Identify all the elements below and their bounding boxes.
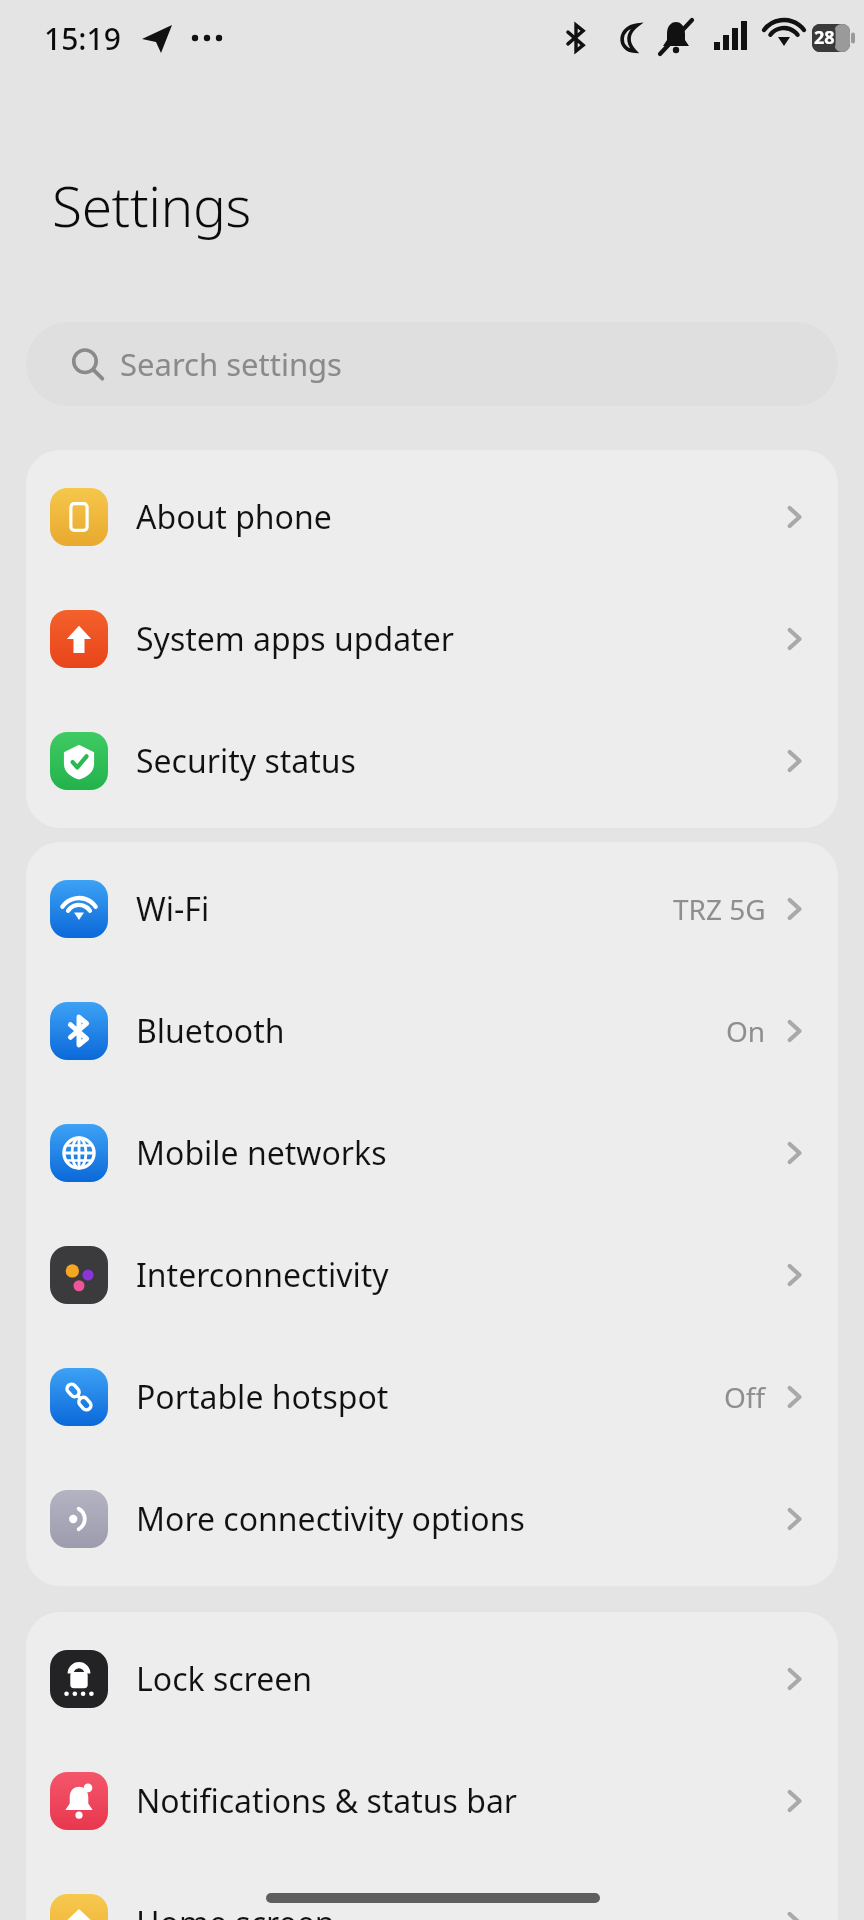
staticText: TRZ 5G: [673, 890, 766, 928]
staticText: System apps updater: [136, 617, 454, 661]
button[interactable]: Wi-Fi: [26, 848, 838, 970]
button[interactable]: Security status: [26, 700, 838, 822]
button[interactable]: Notifications & status bar: [26, 1740, 838, 1862]
staticText: Security status: [136, 739, 356, 783]
staticText: Settings: [52, 168, 251, 243]
button[interactable]: About phone: [26, 456, 838, 578]
staticText: 15:19: [44, 18, 121, 59]
staticText: 28: [814, 25, 835, 50]
button[interactable]: System apps updater: [26, 578, 838, 700]
staticText: On: [726, 1012, 766, 1050]
staticText: Search settings: [120, 343, 342, 385]
staticText: Bluetooth: [136, 1009, 285, 1053]
staticText: Lock screen: [136, 1657, 313, 1701]
button[interactable]: Interconnectivity: [26, 1214, 838, 1336]
button[interactable]: Search settings: [26, 322, 838, 406]
staticText: About phone: [136, 495, 332, 539]
staticText: Home screen: [136, 1901, 335, 1920]
staticText: Off: [724, 1378, 766, 1416]
button[interactable]: Mobile networks: [26, 1092, 838, 1214]
staticText: Portable hotspot: [136, 1375, 389, 1419]
staticText: Notifications & status bar: [136, 1779, 518, 1823]
button[interactable]: Home screen: [26, 1862, 838, 1920]
button[interactable]: More connectivity options: [26, 1458, 838, 1580]
staticText: Interconnectivity: [136, 1253, 389, 1297]
staticText: More connectivity options: [136, 1497, 525, 1541]
button[interactable]: Portable hotspot: [26, 1336, 838, 1458]
staticText: Mobile networks: [136, 1131, 387, 1175]
button[interactable]: Lock screen: [26, 1618, 838, 1740]
button[interactable]: Bluetooth: [26, 970, 838, 1092]
staticText: Wi-Fi: [136, 887, 210, 931]
